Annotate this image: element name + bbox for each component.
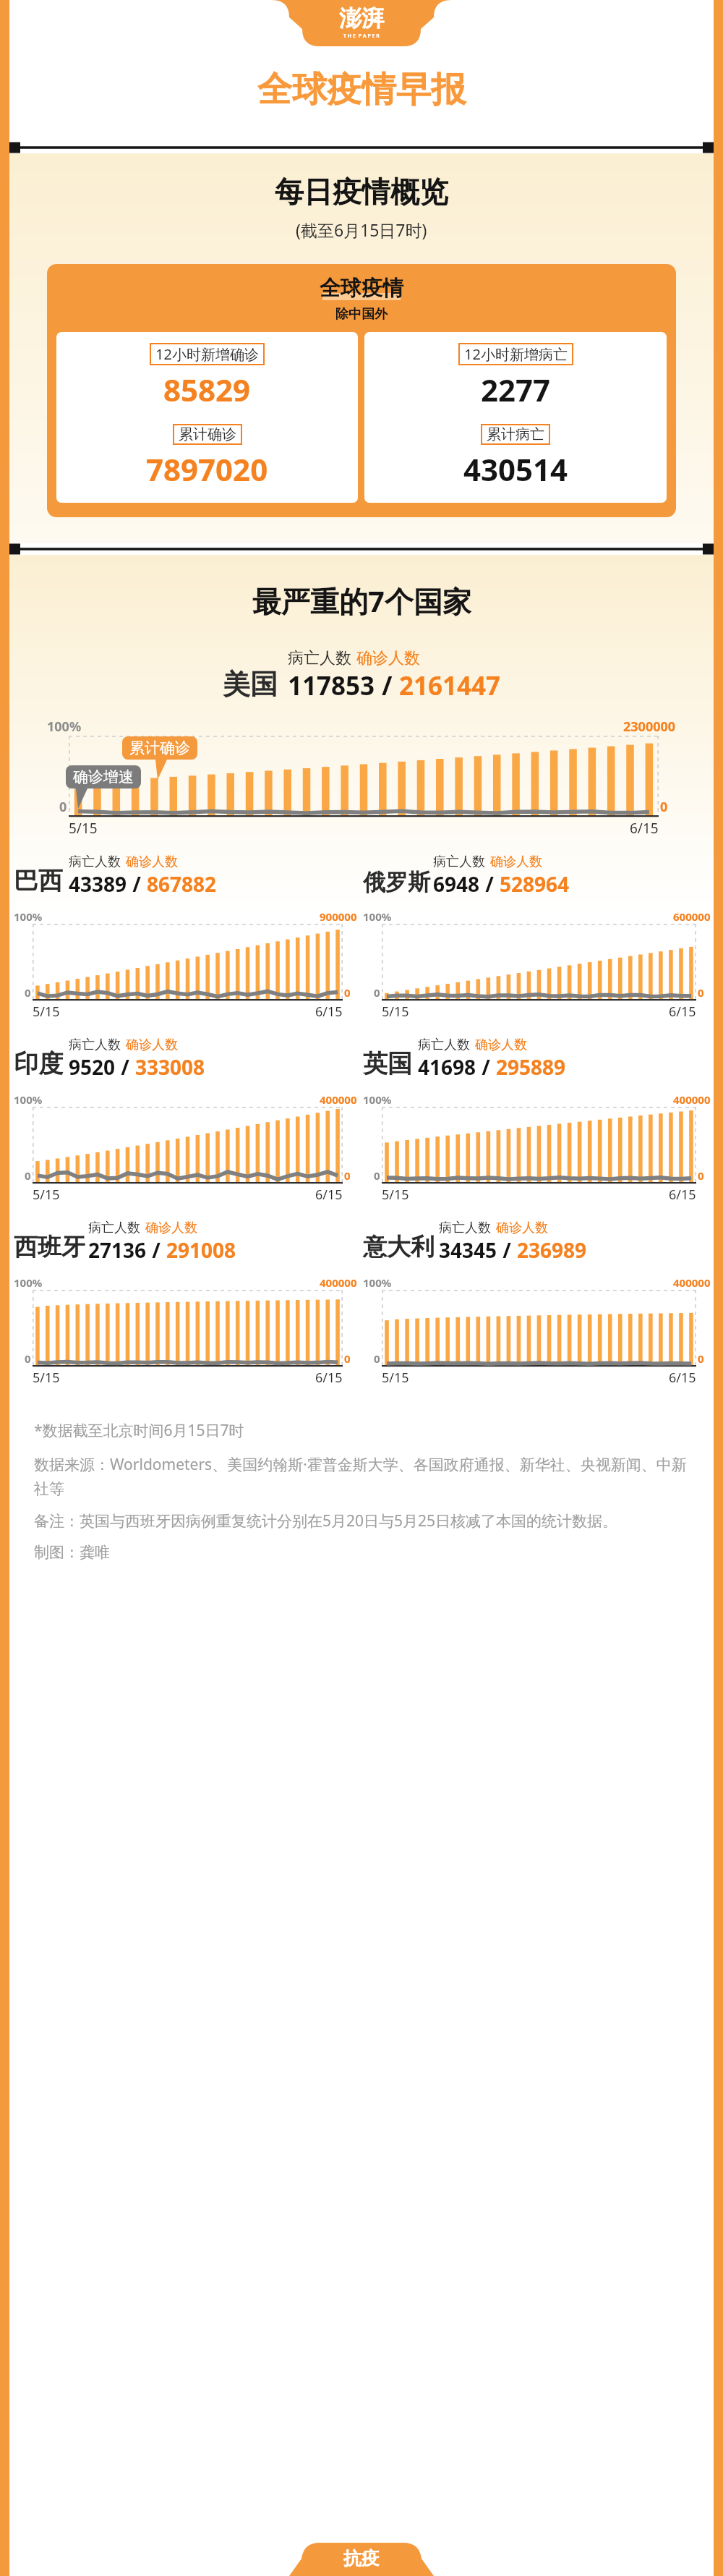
staticText: 0 (344, 985, 351, 1000)
staticText: 6/15 (630, 819, 659, 838)
staticText: 6948 (433, 870, 480, 898)
staticText: *数据截至北京时间6月15日7时 (34, 1420, 244, 1441)
staticText: / (147, 1236, 166, 1264)
staticText: 0 (698, 1168, 704, 1183)
staticText: 确诊人数 (475, 1037, 527, 1053)
staticText: 西班牙 (14, 1232, 85, 1262)
staticText: 6/15 (669, 1003, 696, 1021)
staticText: 数据来源：Worldometers、美国约翰斯·霍普金斯大学、各国政府通报、新华… (34, 1454, 689, 1499)
staticText: / (375, 668, 399, 703)
staticText: 9520 (69, 1053, 116, 1081)
staticText: 0 (25, 985, 31, 1000)
staticText: 病亡人数 (69, 1037, 121, 1053)
staticText: 5/15 (69, 819, 98, 838)
staticText: 27136 (88, 1236, 147, 1264)
staticText: 2300000 (623, 718, 676, 736)
staticText: 累计病亡 (487, 425, 544, 443)
staticText: 6/15 (315, 1369, 343, 1387)
staticText: 除中国外 (335, 306, 388, 323)
staticText: 41698 (418, 1053, 476, 1081)
staticText: 400000 (673, 1092, 711, 1107)
staticText: / (497, 1236, 517, 1264)
staticText: 全球疫情早报 (257, 68, 466, 111)
staticText: 0 (698, 1351, 704, 1366)
staticText: 236989 (517, 1236, 587, 1264)
staticText: 6/15 (669, 1369, 696, 1387)
staticText: 6/15 (669, 1186, 696, 1204)
staticText: 117853 (288, 668, 375, 703)
staticText: 确诊人数 (145, 1220, 197, 1236)
staticText: 确诊人数 (356, 648, 420, 668)
staticText: 100% (363, 1275, 392, 1290)
staticText: 病亡人数 (288, 648, 351, 668)
staticText: 0 (25, 1168, 31, 1183)
button[interactable]: 12小时新增确诊 (56, 332, 358, 503)
staticText: 意大利 (363, 1232, 435, 1262)
staticText: 291008 (166, 1236, 236, 1264)
staticText: 病亡人数 (433, 854, 485, 870)
staticText: 6/15 (315, 1003, 343, 1021)
staticText: 俄罗斯 (363, 868, 430, 896)
button[interactable]: 确诊增速 (66, 765, 141, 788)
staticText: 最严重的7个国家 (252, 581, 471, 621)
staticText: 6/15 (315, 1186, 343, 1204)
staticText: 巴西 (14, 865, 63, 896)
staticText: 528964 (500, 870, 570, 898)
staticText: T H E P A P E R (343, 33, 380, 40)
button[interactable]: 全球疫情 (47, 264, 676, 517)
staticText: / (127, 870, 147, 898)
staticText: 295889 (496, 1053, 566, 1081)
staticText: (截至6月15日7时) (296, 218, 427, 241)
staticText: 5/15 (33, 1186, 60, 1204)
staticText: 100% (14, 1092, 43, 1107)
staticText: 43389 (69, 870, 127, 898)
staticText: 0 (374, 985, 380, 1000)
staticText: 0 (660, 798, 668, 816)
staticText: 每日疫情概览 (275, 174, 448, 210)
staticText: 抗疫 (343, 2547, 380, 2569)
staticText: 美国 (223, 667, 278, 702)
staticText: 12小时新增确诊 (155, 344, 259, 364)
staticText: 400000 (320, 1275, 357, 1290)
staticText: 0 (59, 798, 67, 816)
staticText: 5/15 (382, 1369, 409, 1387)
staticText: 34345 (439, 1236, 497, 1264)
staticText: 2161447 (399, 668, 501, 703)
staticText: 12小时新增病亡 (464, 344, 568, 364)
staticText: 900000 (320, 909, 357, 924)
staticText: 确诊增速 (73, 768, 134, 786)
staticText: 确诊人数 (490, 854, 542, 870)
staticText: 备注：英国与西班牙因病例重复统计分别在5月20日与5月25日核减了本国的统计数据… (34, 1510, 618, 1531)
staticText: 0 (698, 985, 704, 1000)
staticText: 85829 (163, 369, 251, 410)
staticText: 全球疫情 (320, 275, 403, 302)
staticText: 印度 (14, 1048, 63, 1079)
staticText: 0 (374, 1351, 380, 1366)
staticText: 病亡人数 (69, 854, 121, 870)
staticText: 100% (363, 1092, 392, 1107)
staticText: 2277 (481, 369, 551, 410)
staticText: 累计确诊 (179, 425, 236, 443)
button[interactable]: 累计确诊 (122, 736, 197, 760)
button[interactable]: 12小时新增病亡 (364, 332, 667, 503)
staticText: / (476, 1053, 496, 1081)
staticText: 0 (344, 1351, 351, 1366)
staticText: 430514 (463, 449, 568, 490)
staticText: 0 (344, 1168, 351, 1183)
staticText: 400000 (673, 1275, 711, 1290)
staticText: 100% (47, 718, 82, 736)
staticText: 英国 (363, 1048, 412, 1079)
staticText: 确诊人数 (126, 1037, 178, 1053)
staticText: 累计确诊 (129, 739, 190, 757)
staticText: 病亡人数 (418, 1037, 470, 1053)
staticText: 制图：龚唯 (34, 1543, 110, 1562)
staticText: 0 (25, 1351, 31, 1366)
staticText: 5/15 (382, 1186, 409, 1204)
staticText: 100% (363, 909, 392, 924)
staticText: 确诊人数 (496, 1220, 548, 1236)
staticText: 100% (14, 909, 43, 924)
staticText: 病亡人数 (88, 1220, 140, 1236)
staticText: / (116, 1053, 135, 1081)
staticText: / (480, 870, 500, 898)
staticText: 确诊人数 (126, 854, 178, 870)
